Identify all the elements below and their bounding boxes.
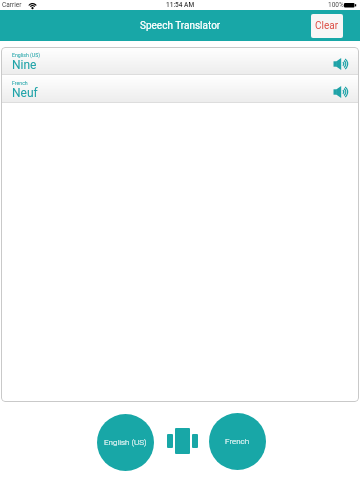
staticText: Carrier — [2, 1, 22, 9]
staticText: Neuf — [12, 86, 38, 100]
staticText: Speech Translator — [140, 20, 221, 32]
staticText: French — [12, 80, 28, 86]
staticText: Nine — [12, 58, 37, 72]
button[interactable]: French — [209, 413, 266, 470]
staticText: Clear — [315, 20, 339, 32]
button[interactable] — [333, 58, 349, 70]
button[interactable]: Clear — [311, 14, 343, 38]
staticText: English (US) — [104, 438, 147, 447]
staticText: French — [225, 437, 250, 446]
staticText: 11:54 AM — [166, 1, 195, 9]
button[interactable]: English (US) — [1, 47, 359, 75]
staticText: English (US) — [12, 52, 41, 58]
button[interactable]: French — [1, 75, 359, 103]
button[interactable] — [165, 426, 200, 456]
staticText: 100% — [328, 1, 344, 9]
button[interactable] — [333, 86, 349, 98]
button[interactable]: English (US) — [97, 414, 154, 471]
